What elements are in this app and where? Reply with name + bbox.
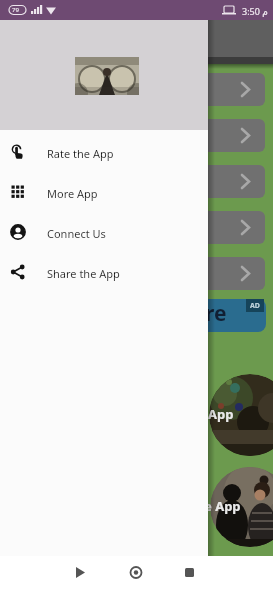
staticText: 79 bbox=[12, 6, 19, 14]
staticText: e App bbox=[204, 497, 241, 515]
staticText: 3:50 م bbox=[242, 5, 268, 17]
staticText: Rate the App bbox=[47, 146, 114, 161]
staticText: More App bbox=[47, 186, 98, 201]
staticText: Connect Us bbox=[47, 226, 106, 241]
staticText: AD bbox=[250, 301, 260, 311]
staticText: More bbox=[172, 299, 227, 328]
staticText: Share the App bbox=[47, 266, 120, 281]
staticText: App bbox=[208, 405, 234, 423]
